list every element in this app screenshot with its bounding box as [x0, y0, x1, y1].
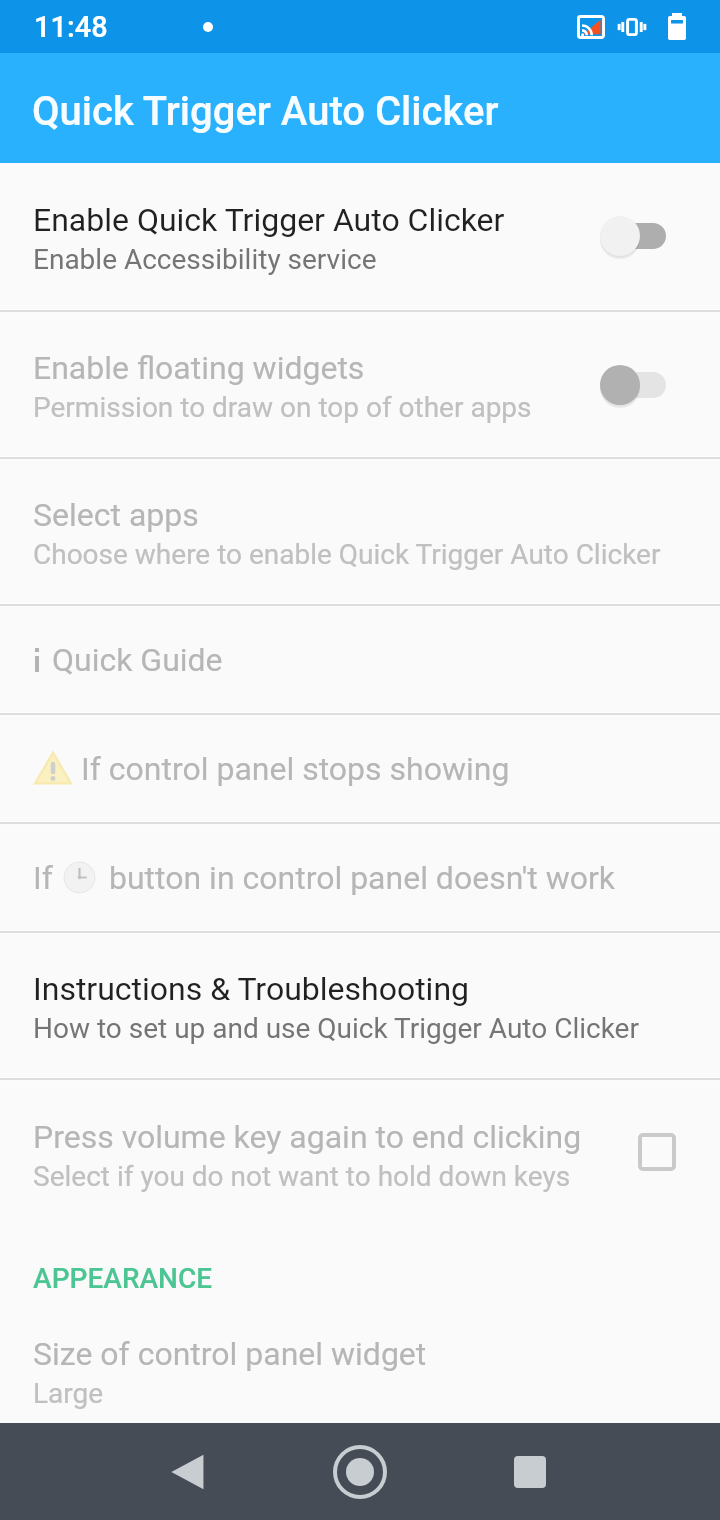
staticText: Enable Quick Trigger Auto Clicker [33, 201, 505, 239]
button[interactable]: Home [312, 1423, 408, 1520]
button[interactable]: Select apps [0, 460, 720, 603]
button[interactable]: If control panel stops showing [0, 716, 720, 821]
staticText: APPEARANCE [33, 1262, 213, 1295]
staticText: Quick Trigger Auto Clicker [32, 88, 499, 135]
staticText: Choose where to enable Quick Trigger Aut… [33, 538, 661, 571]
staticText: Large [33, 1377, 104, 1410]
staticText: Select if you do not want to hold down k… [33, 1160, 571, 1193]
staticText: How to set up and use Quick Trigger Auto… [33, 1012, 639, 1045]
staticText: button in control panel doesn't work [109, 859, 616, 897]
staticText: 11:48 [34, 10, 108, 44]
staticText: Permission to draw on top of other apps [33, 391, 532, 424]
staticText: Quick Guide [52, 641, 223, 679]
button[interactable]: Enable Quick Trigger Auto Clicker [0, 163, 720, 309]
button[interactable]: Press volume key again to end clicking [0, 1081, 720, 1226]
staticText: If [33, 859, 53, 897]
button[interactable]: Instructions & Troubleshooting [0, 934, 720, 1077]
button[interactable]: If [0, 825, 720, 930]
button[interactable]: Size of control panel widget [0, 1335, 720, 1410]
button[interactable]: Enable floating widgets [0, 313, 720, 456]
staticText: Instructions & Troubleshooting [33, 970, 470, 1008]
staticText: If control panel stops showing [81, 750, 510, 788]
staticText: Size of control panel widget [33, 1335, 427, 1373]
staticText: Enable Accessibility service [33, 243, 377, 276]
button[interactable]: Back [140, 1423, 236, 1520]
staticText: Press volume key again to end clicking [33, 1118, 582, 1156]
button[interactable]: Recent apps [482, 1423, 578, 1520]
staticText: Enable floating widgets [33, 349, 365, 387]
staticText: Select apps [33, 496, 199, 534]
button[interactable]: Quick Guide [0, 607, 720, 712]
